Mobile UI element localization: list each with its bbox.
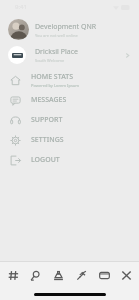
button[interactable]: MESSAGES bbox=[0, 90, 139, 110]
button[interactable]: Grid bbox=[3, 265, 23, 285]
staticText: Development QNR bbox=[35, 22, 97, 32]
button[interactable]: Development QNR bbox=[0, 16, 139, 43]
staticText: You are not well online bbox=[35, 33, 78, 38]
button[interactable]: LOGOUT bbox=[0, 150, 139, 170]
staticText: Powered by Lorem Ipsum bbox=[31, 83, 80, 88]
staticText: 9:41 bbox=[15, 3, 27, 11]
staticText: LOGOUT bbox=[31, 155, 60, 165]
staticText: MESSAGES bbox=[31, 95, 67, 105]
staticText: SETTINGS bbox=[31, 135, 64, 145]
staticText: HOME STATS bbox=[31, 72, 74, 82]
staticText: Dricksil Place bbox=[35, 47, 78, 57]
button[interactable]: Measure bbox=[25, 265, 45, 285]
button[interactable]: Pin bbox=[71, 265, 91, 285]
button[interactable]: SUPPORT bbox=[0, 110, 139, 130]
button[interactable]: Close bbox=[116, 265, 136, 285]
staticText: South Welcome bbox=[35, 58, 65, 63]
button[interactable]: Dricksil Place bbox=[0, 43, 139, 67]
button[interactable]: SETTINGS bbox=[0, 130, 139, 150]
staticText: SUPPORT bbox=[31, 115, 63, 125]
button[interactable]: Frame bbox=[94, 265, 114, 285]
button[interactable]: HOME STATS bbox=[0, 70, 139, 90]
button[interactable]: Paint bbox=[48, 265, 68, 285]
